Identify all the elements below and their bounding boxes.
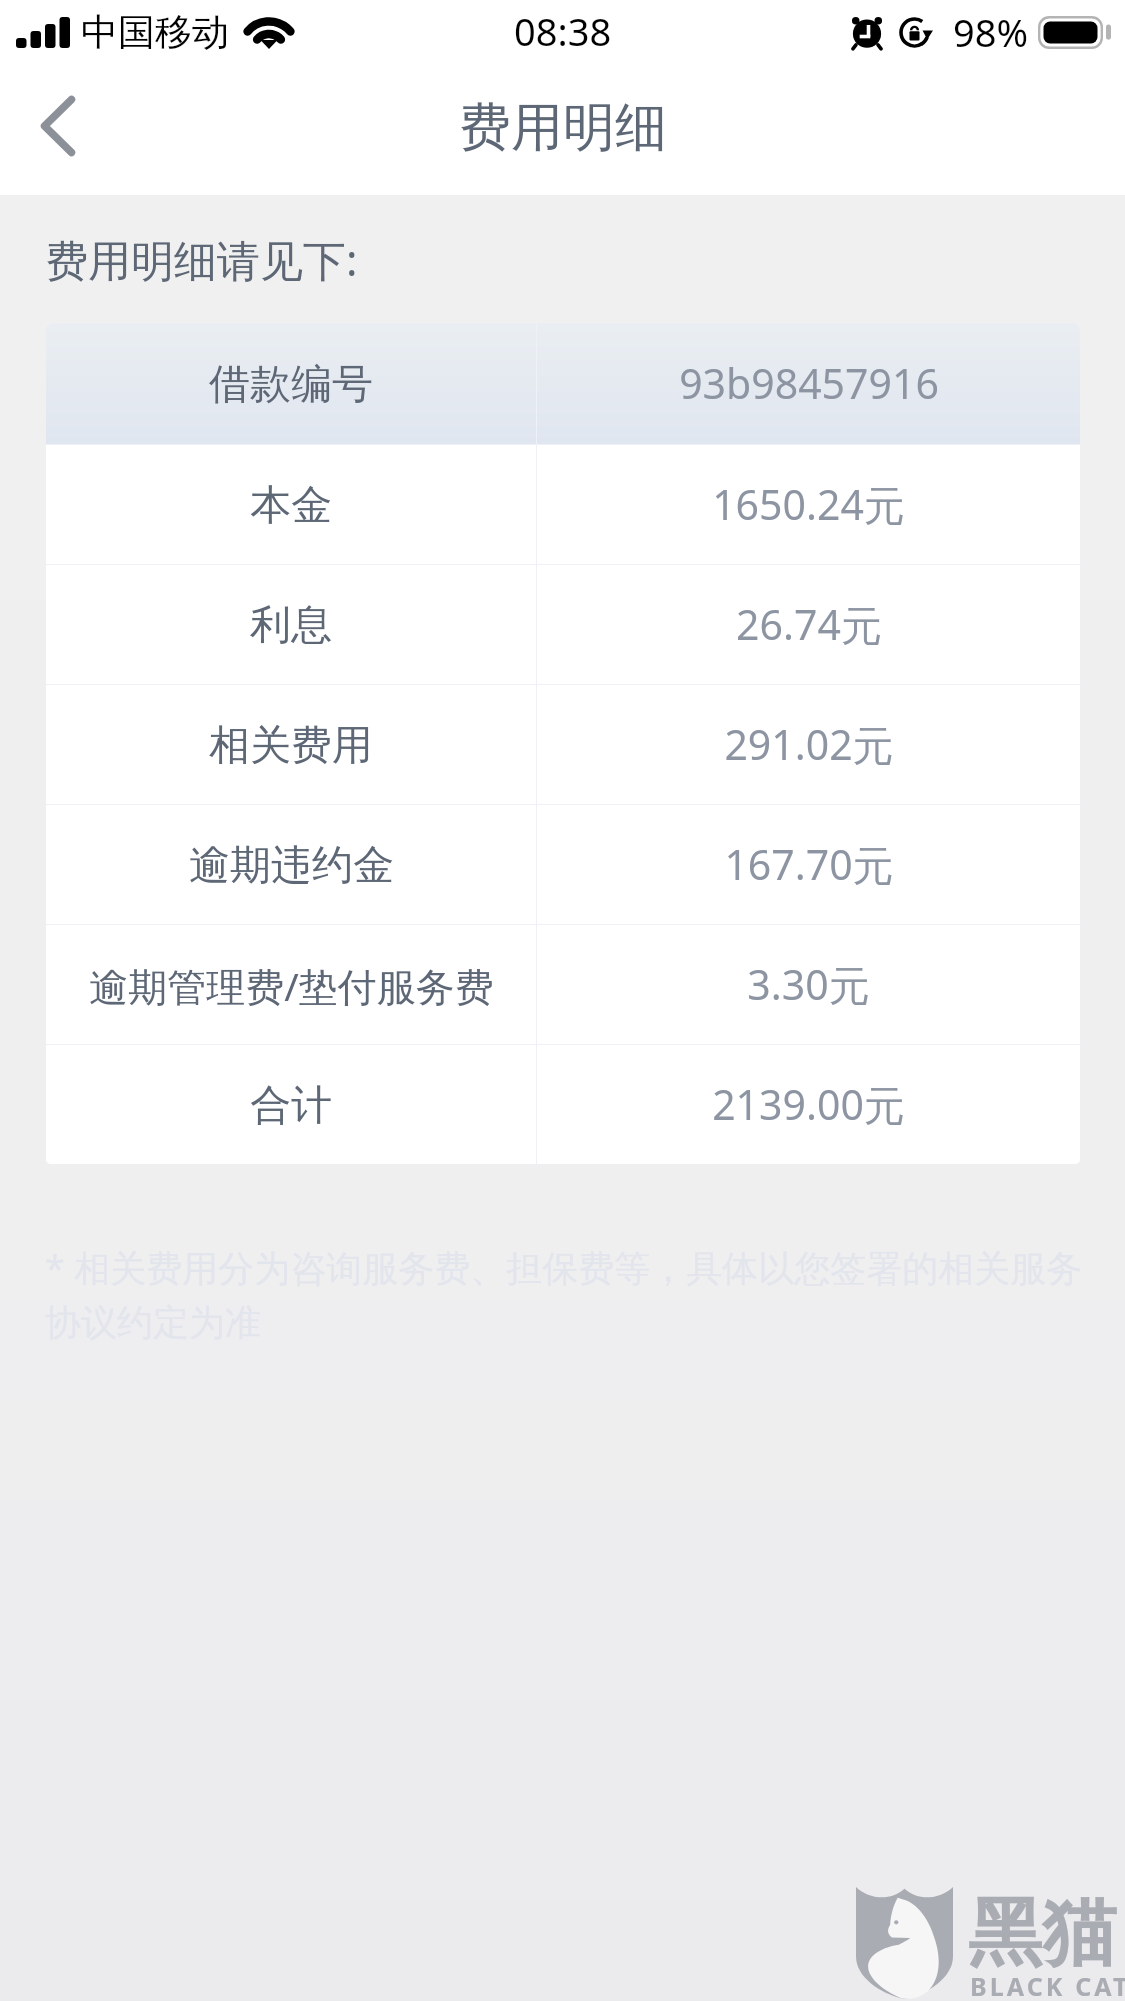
- staticText: 26.74元: [736, 596, 882, 652]
- staticText: 逾期违约金: [189, 840, 394, 892]
- staticText: 2139.00元: [712, 1076, 905, 1132]
- staticText: 291.02元: [724, 716, 894, 772]
- button[interactable]: 相关费用: [46, 685, 1080, 804]
- staticText: 利息: [250, 600, 332, 652]
- staticText: 中国移动: [81, 9, 229, 56]
- staticText: 黑猫: [968, 1887, 1116, 1980]
- staticText: * 相关费用分为咨询服务费、担保费等，具体以您签署的相关服务协议约定为准: [45, 1243, 1117, 1345]
- staticText: 费用明细: [459, 95, 667, 161]
- staticText: 合计: [250, 1080, 332, 1132]
- staticText: 1650.24元: [712, 476, 905, 532]
- button[interactable]: 逾期违约金: [46, 805, 1080, 924]
- staticText: 98%: [953, 6, 1029, 58]
- button[interactable]: 本金: [46, 445, 1080, 564]
- staticText: 费用明细请见下:: [45, 230, 358, 289]
- staticText: 93b98457916: [679, 355, 939, 411]
- staticText: 08:38: [514, 5, 612, 57]
- staticText: 相关费用: [209, 720, 373, 772]
- button[interactable]: 逾期管理费/垫付服务费: [46, 925, 1080, 1044]
- staticText: 逾期管理费/垫付服务费: [89, 959, 494, 1012]
- staticText: 借款编号: [209, 359, 373, 411]
- staticText: BLACK CAT: [970, 1969, 1125, 2001]
- button[interactable]: 借款编号: [46, 323, 1080, 444]
- button[interactable]: 合计: [46, 1045, 1080, 1164]
- button[interactable]: Back: [0, 71, 118, 189]
- staticText: 167.70元: [724, 836, 894, 892]
- button[interactable]: 利息: [46, 565, 1080, 684]
- staticText: 本金: [250, 480, 332, 532]
- staticText: 3.30元: [747, 956, 870, 1012]
